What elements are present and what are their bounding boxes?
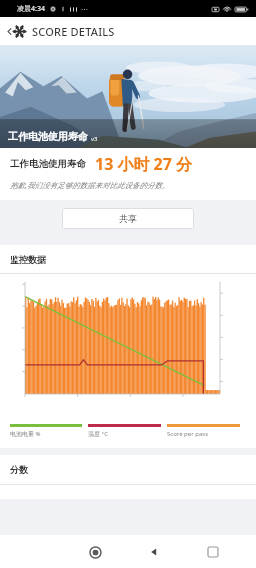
staticText: 温度 °C: [88, 430, 108, 438]
button[interactable]: Back: [141, 539, 167, 565]
staticText: 监控数据: [10, 254, 46, 265]
staticText: 工作电池使用寿命: [10, 158, 86, 170]
staticText: 抱歉,我们没有足够的数据来对比此设备的分数。: [10, 180, 170, 190]
staticText: Score per pass: [167, 430, 209, 438]
button[interactable]: Home: [82, 539, 108, 565]
staticText: 凌晨4:34: [17, 4, 45, 14]
button[interactable]: 共享: [62, 208, 194, 229]
staticText: 共享: [119, 213, 137, 224]
staticText: v3: [91, 135, 98, 143]
staticText: 电池电量 %: [10, 430, 41, 438]
staticText: 分数: [10, 464, 28, 475]
staticText: SCORE DETAILS: [32, 24, 115, 39]
button[interactable]: Recent apps: [200, 539, 226, 565]
staticText: 13 小时 27 分: [95, 153, 193, 175]
staticText: 工作电池使用寿命: [8, 130, 88, 143]
button[interactable]: Back: [3, 27, 16, 36]
